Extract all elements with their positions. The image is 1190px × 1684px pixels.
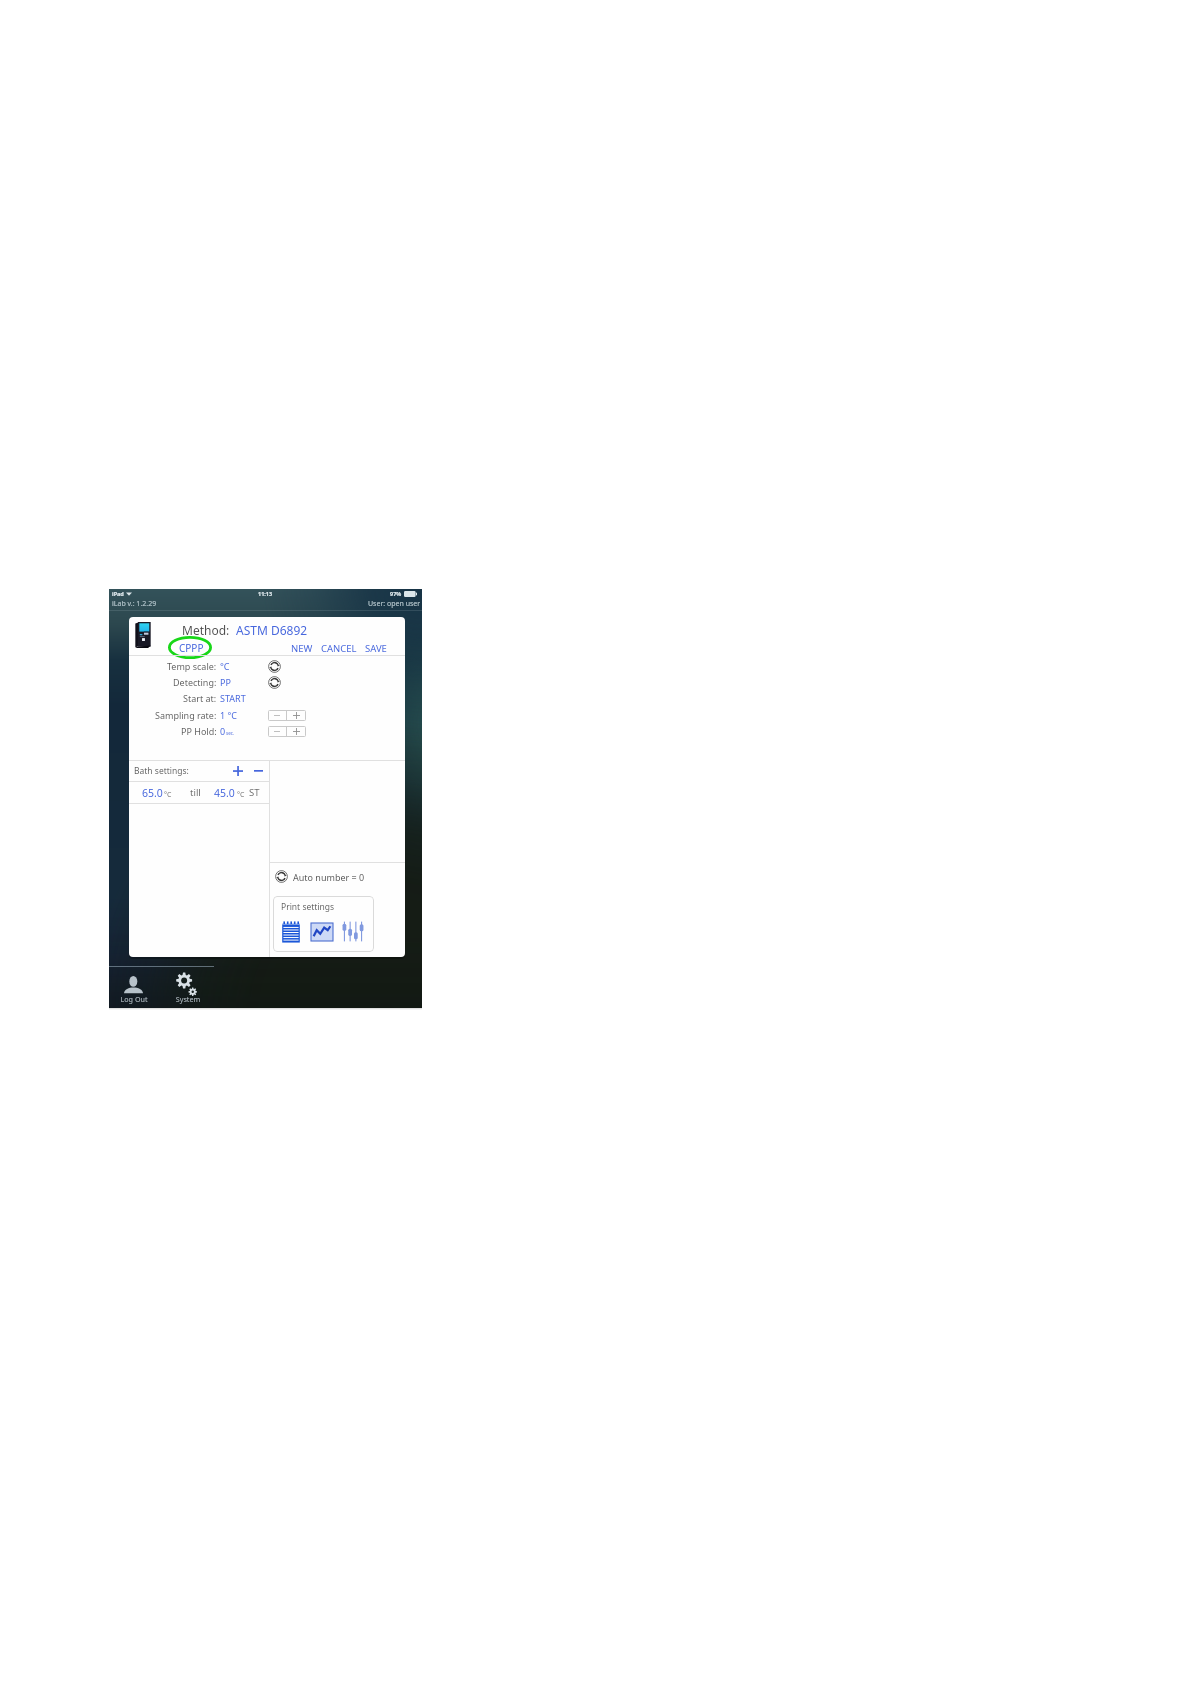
button[interactable]: Remove bath step	[251, 764, 265, 778]
staticText: °C	[237, 790, 245, 800]
staticText: 65.0	[142, 786, 163, 800]
staticText: CANCEL	[321, 642, 357, 655]
staticText: till	[190, 786, 201, 799]
staticText: Auto number = 0	[293, 871, 365, 883]
staticText: Start at:	[183, 692, 217, 704]
staticText: Log Out	[112, 994, 156, 1004]
staticText: PP Hold:	[181, 725, 217, 737]
staticText: 45.0	[214, 786, 235, 800]
staticText: sec.	[226, 730, 235, 736]
staticText: iLab v.: 1.2.29	[112, 599, 157, 609]
staticText: ST	[249, 786, 260, 799]
staticText: Bath settings:	[134, 765, 189, 777]
staticText: User: open user	[368, 599, 421, 609]
staticText: Detecting:	[173, 676, 217, 688]
staticText: 0	[220, 725, 226, 737]
button[interactable]: CANCEL	[321, 642, 357, 655]
button[interactable]: Print parameters	[342, 921, 364, 942]
button[interactable]: Log Out	[111, 972, 155, 1004]
button[interactable]: Decrease	[268, 726, 286, 737]
button[interactable]: Increase	[287, 710, 306, 721]
staticText: NEW	[291, 642, 313, 655]
button[interactable]: Change Temp scale:	[268, 660, 281, 673]
staticText: SAVE	[365, 642, 387, 655]
button[interactable]: Increase	[287, 726, 306, 737]
staticText: Print settings	[281, 901, 335, 913]
staticText: Temp scale:	[167, 660, 217, 672]
button[interactable]: NEW	[291, 642, 313, 655]
button[interactable]: Add bath step	[231, 764, 245, 778]
staticText: Sampling rate:	[155, 709, 217, 721]
button[interactable]: Print report	[281, 921, 301, 943]
staticText: PP	[220, 676, 231, 688]
button[interactable]: SAVE	[365, 642, 387, 655]
button[interactable]: Change Detecting:	[268, 676, 281, 689]
button[interactable]: System	[165, 972, 209, 1004]
staticText: °C	[220, 660, 230, 672]
button[interactable]: Auto number	[275, 870, 288, 883]
button[interactable]: 65.0	[142, 782, 269, 803]
button[interactable]: Decrease	[268, 710, 286, 721]
button[interactable]: Method:	[182, 622, 308, 638]
staticText: CPPP	[179, 641, 204, 655]
staticText: START	[220, 692, 246, 704]
staticText: °C	[164, 790, 172, 800]
button[interactable]: Print chart	[311, 923, 333, 941]
button[interactable]: CPPP	[174, 641, 208, 655]
staticText: iPad	[112, 590, 124, 597]
staticText: System	[166, 994, 210, 1004]
staticText: 97%	[390, 590, 402, 597]
staticText: Method:	[182, 622, 230, 638]
staticText: 1 °C	[220, 709, 238, 721]
staticText: ASTM D6892	[236, 622, 308, 638]
staticText: 11:13	[258, 590, 273, 597]
button[interactable]: Instrument	[135, 622, 151, 648]
